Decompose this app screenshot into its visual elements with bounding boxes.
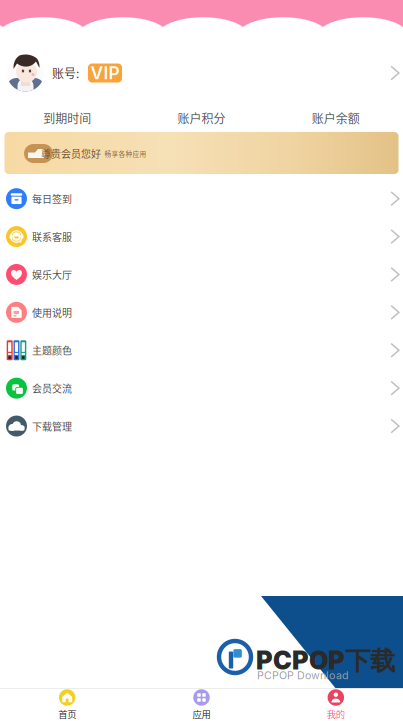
button[interactable]: 我的 <box>269 689 403 721</box>
staticText: 应用 <box>192 707 210 721</box>
staticText: PCPOP下载 <box>256 645 395 677</box>
staticText: 我的 <box>327 707 345 721</box>
staticText: 联系客服 <box>32 229 72 244</box>
staticText: VIP <box>90 62 119 83</box>
staticText: 账户积分 <box>177 109 225 127</box>
staticText: 账户余额 <box>312 109 360 127</box>
staticText: PCPOP Download <box>257 669 349 682</box>
staticText: 尊贵会员您好 <box>41 146 101 161</box>
button[interactable]: 账号: <box>0 54 403 91</box>
button[interactable]: 使用说明 <box>0 293 403 331</box>
button[interactable]: 应用 <box>134 689 269 721</box>
staticText: 使用说明 <box>32 305 72 320</box>
button[interactable]: 主题颜色 <box>0 331 403 369</box>
staticText: 每日签到 <box>32 191 72 206</box>
button[interactable]: 首页 <box>0 689 134 721</box>
button[interactable]: 下载管理 <box>0 407 403 445</box>
staticText: 下载管理 <box>32 419 72 433</box>
staticText: 主题颜色 <box>32 343 72 357</box>
staticText: 畅享各种应用 <box>104 149 146 158</box>
button[interactable]: 联系客服 <box>0 218 403 255</box>
button[interactable]: 娱乐大厅 <box>0 255 403 293</box>
button[interactable]: 每日签到 <box>0 180 403 218</box>
staticText: 账号: <box>52 64 79 82</box>
staticText: 首页 <box>58 707 76 721</box>
staticText: 到期时间 <box>43 109 91 127</box>
staticText: 会员交流 <box>32 381 72 395</box>
button[interactable]: 会员交流 <box>0 369 403 407</box>
staticText: 娱乐大厅 <box>32 267 72 282</box>
